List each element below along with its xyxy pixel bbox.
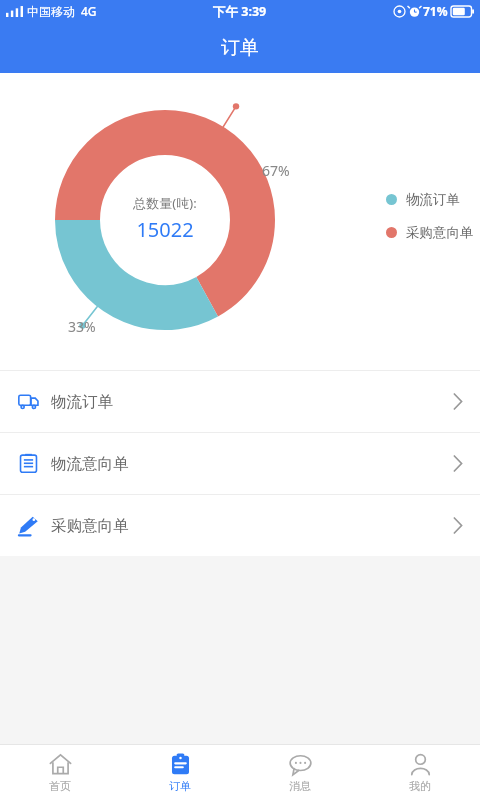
staticText: 中国移动 — [27, 4, 75, 19]
staticText: 物流订单 — [51, 392, 113, 412]
staticText: 67% — [262, 161, 290, 180]
staticText: 物流订单 — [406, 191, 460, 208]
button[interactable]: 首页 — [0, 745, 120, 800]
button[interactable]: 消息 — [240, 745, 360, 800]
staticText: 4G — [81, 3, 97, 19]
staticText: 订单 — [221, 36, 259, 60]
staticText: 采购意向单 — [51, 516, 129, 536]
staticText: 我的 — [409, 779, 431, 793]
staticText: 物流意向单 — [51, 454, 129, 474]
staticText: 订单 — [169, 779, 191, 793]
button[interactable]: 采购意向单 — [0, 495, 480, 556]
button[interactable]: 物流订单 — [0, 371, 480, 432]
staticText: 下午 3:39 — [213, 3, 267, 20]
staticText: 71% — [423, 3, 448, 19]
button[interactable]: 我的 — [360, 745, 480, 800]
staticText: 33% — [68, 317, 96, 336]
button[interactable]: 物流意向单 — [0, 433, 480, 494]
staticText: 首页 — [49, 779, 71, 793]
button[interactable]: 订单 — [120, 745, 240, 800]
staticText: 消息 — [289, 779, 311, 793]
staticText: 总数量(吨): — [133, 194, 197, 212]
staticText: 采购意向单 — [406, 224, 474, 241]
staticText: 15022 — [136, 216, 194, 243]
